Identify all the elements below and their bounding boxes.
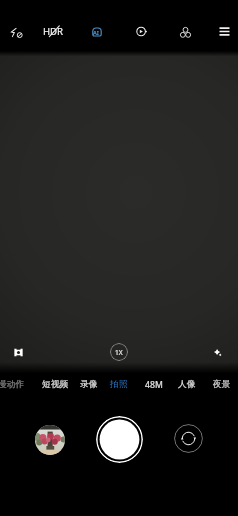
staticText: 48M <box>145 379 163 391</box>
button[interactable]: AI scene detection <box>85 20 108 43</box>
button[interactable]: Switch camera <box>174 424 203 453</box>
staticText: 1X <box>115 348 123 357</box>
button[interactable]: Flash off <box>4 19 30 45</box>
button[interactable]: 夜景 <box>204 376 238 393</box>
button[interactable]: 短视频 <box>37 376 73 393</box>
button[interactable]: Macro mode <box>7 341 29 363</box>
button[interactable]: 48M <box>136 376 172 393</box>
staticText: 夜景 <box>213 379 231 390</box>
button[interactable]: 1X <box>110 343 128 361</box>
staticText: HDR <box>43 25 64 38</box>
button[interactable]: Gallery <box>35 425 65 455</box>
staticText: 录像 <box>80 379 98 390</box>
staticText: 短视频 <box>42 379 69 390</box>
button[interactable]: 慢动作 <box>0 376 29 393</box>
staticText: 慢动作 <box>0 379 25 390</box>
button[interactable]: 人像 <box>169 376 205 393</box>
button[interactable]: Menu <box>211 18 237 44</box>
button[interactable]: 拍照 <box>101 376 137 393</box>
button[interactable]: Movie effects <box>128 18 154 44</box>
button[interactable]: Filters <box>172 19 198 45</box>
staticText: AI <box>93 29 100 37</box>
button[interactable]: HDR off <box>39 20 67 43</box>
staticText: 拍照 <box>110 379 128 390</box>
button[interactable]: 录像 <box>71 376 107 393</box>
button[interactable]: Take photo <box>96 416 143 463</box>
staticText: 人像 <box>178 379 196 390</box>
button[interactable]: Beautify <box>206 341 228 363</box>
